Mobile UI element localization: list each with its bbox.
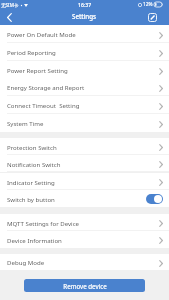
button[interactable]: Protection Switch xyxy=(0,138,169,155)
staticText: System Time xyxy=(7,119,44,127)
button[interactable]: MQTT Settings for Device xyxy=(0,214,169,231)
staticText: Indicator Setting xyxy=(7,178,55,186)
staticText: Energy Storage and Report xyxy=(7,83,85,91)
staticText: Remove device xyxy=(63,282,107,290)
button[interactable]: Notification Switch xyxy=(0,155,169,172)
staticText: 12% xyxy=(143,1,153,8)
button[interactable]: Device Information xyxy=(0,231,169,248)
button[interactable]: System Time xyxy=(0,114,169,132)
staticText: Power Report Setting xyxy=(7,66,68,74)
staticText: Power On Default Mode xyxy=(7,30,76,38)
staticText: Device Information xyxy=(7,236,62,244)
staticText: Period Reporting xyxy=(7,48,56,56)
button[interactable]: Energy Storage and Report xyxy=(0,78,169,96)
button[interactable]: Power Report Setting xyxy=(0,61,169,79)
button[interactable]: Switch by button xyxy=(0,190,169,207)
staticText: Debug Mode xyxy=(7,258,45,266)
button[interactable]: Connect Timeout Setting xyxy=(0,96,169,114)
staticText: Settings xyxy=(72,12,97,20)
button[interactable]: Edit xyxy=(136,9,169,25)
staticText: Switch by button xyxy=(7,195,55,203)
button[interactable]: Remove device xyxy=(24,279,145,292)
button[interactable]: Back xyxy=(0,9,18,25)
staticText: Connect Timeout Setting xyxy=(7,101,80,109)
button[interactable]: Power On Default Mode xyxy=(0,25,169,43)
staticText: 16:37 xyxy=(78,1,92,8)
staticText: 无SIM卡 xyxy=(1,2,19,8)
staticText: Notification Switch xyxy=(7,160,61,168)
staticText: Protection Switch xyxy=(7,143,57,151)
button[interactable]: Indicator Setting xyxy=(0,173,169,190)
button[interactable]: Debug Mode xyxy=(0,254,169,270)
button[interactable]: Period Reporting xyxy=(0,43,169,61)
staticText: MQTT Settings for Device xyxy=(7,219,80,227)
